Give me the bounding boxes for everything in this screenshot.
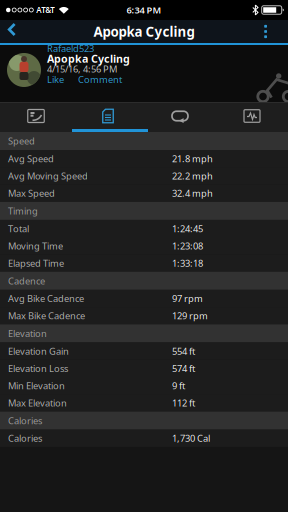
button[interactable]: Rafaeld523 xyxy=(47,43,94,53)
button[interactable] xyxy=(216,103,288,129)
staticText: 112 ft xyxy=(172,397,195,409)
staticText: AT&T xyxy=(36,5,55,15)
staticText: Elevation Loss xyxy=(8,362,68,375)
button[interactable] xyxy=(7,53,41,87)
staticText: Like xyxy=(47,73,64,86)
staticText: 129 rpm xyxy=(172,310,208,322)
button[interactable] xyxy=(144,103,216,129)
staticText: Moving Time xyxy=(8,240,63,252)
staticText: Apopka Cycling xyxy=(93,23,194,40)
staticText: Avg Bike Cadence xyxy=(8,292,84,305)
staticText: Comment xyxy=(78,73,122,86)
staticText: 4/15/16, 4:56 PM xyxy=(47,63,117,75)
button[interactable]: Like xyxy=(47,73,64,86)
staticText: 554 ft xyxy=(172,345,195,357)
button[interactable]: Comment xyxy=(78,73,122,86)
staticText: Timing xyxy=(8,205,38,217)
staticText: 574 ft xyxy=(172,362,195,375)
staticText: 97 rpm xyxy=(172,292,203,305)
staticText: Max Bike Cadence xyxy=(8,310,85,322)
staticText: Max Elevation xyxy=(8,397,67,409)
staticText: Avg Moving Speed xyxy=(8,170,88,182)
staticText: Apopka Cycling xyxy=(47,51,130,66)
staticText: Elevation Gain xyxy=(8,345,69,357)
staticText: Calories xyxy=(8,432,42,444)
staticText: Total xyxy=(8,222,29,235)
staticText: 1,730 Cal xyxy=(172,432,210,444)
staticText: Elapsed Time xyxy=(8,257,64,269)
button[interactable] xyxy=(0,20,26,43)
staticText: 9 ft xyxy=(172,379,185,392)
staticText: Avg Speed xyxy=(8,152,54,165)
button[interactable] xyxy=(0,103,72,129)
staticText: Rafaeld523 xyxy=(47,42,94,55)
staticText: 21.8 mph xyxy=(172,152,213,165)
staticText: Elevation xyxy=(8,327,47,340)
staticText: Min Elevation xyxy=(8,379,65,392)
staticText: 22.2 mph xyxy=(172,170,213,182)
staticText: 1:24:45 xyxy=(172,222,203,235)
staticText: Max Speed xyxy=(8,187,55,199)
staticText: 32.4 mph xyxy=(172,187,213,199)
staticText: 1:33:18 xyxy=(172,257,203,269)
staticText: 1:23:08 xyxy=(172,240,203,252)
staticText: 6:34 PM xyxy=(126,4,161,16)
staticText: Cadence xyxy=(8,275,45,287)
button[interactable] xyxy=(252,20,288,43)
staticText: Calories xyxy=(8,414,42,427)
button[interactable] xyxy=(72,103,144,129)
staticText: Speed xyxy=(8,135,35,147)
